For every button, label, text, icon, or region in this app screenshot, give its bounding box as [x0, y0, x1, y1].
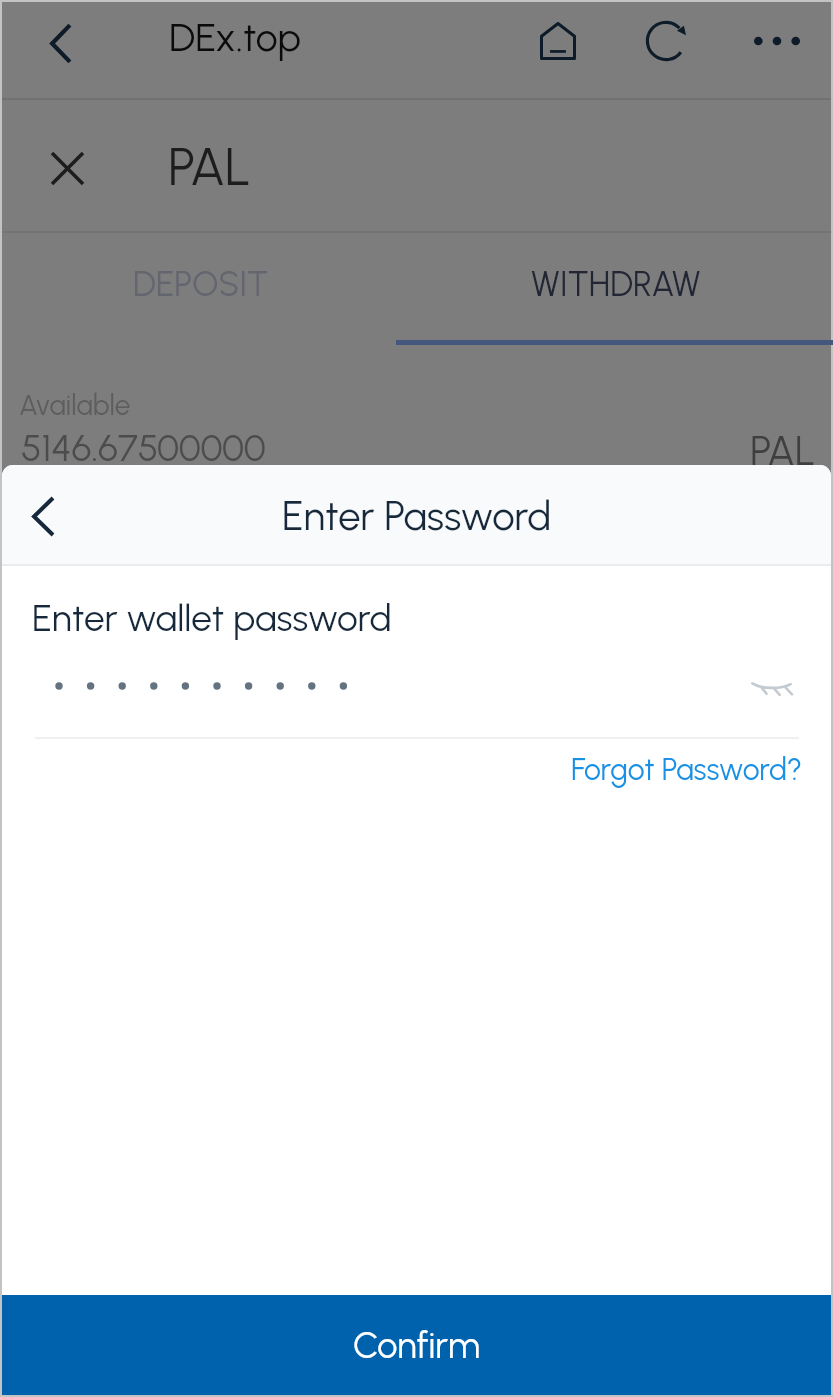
button[interactable]: WITHDRAW	[398, 233, 833, 345]
button[interactable]: DEPOSIT	[2, 233, 399, 345]
button[interactable]: Back	[30, 9, 92, 77]
button[interactable]: Forgot Password?	[557, 744, 807, 794]
button[interactable]: Back	[10, 483, 76, 549]
staticText: WITHDRAW	[531, 264, 701, 305]
button[interactable]: Reload	[633, 8, 699, 74]
staticText: PAL	[168, 136, 251, 198]
button[interactable]: Show password	[735, 662, 807, 716]
staticText: Enter wallet password	[32, 596, 392, 640]
staticText: Forgot Password?	[571, 751, 803, 787]
staticText: Enter Password	[282, 492, 552, 540]
staticText: Confirm	[353, 1324, 480, 1367]
staticText: Available	[19, 388, 131, 422]
button[interactable]: More options	[744, 8, 810, 74]
staticText: DEx.top	[169, 14, 301, 61]
staticText: DEPOSIT	[133, 264, 269, 305]
staticText: 5146.67500000	[21, 426, 266, 470]
button[interactable]: Home	[525, 8, 591, 74]
staticText: PAL	[750, 426, 816, 475]
button[interactable]: Close	[34, 135, 100, 201]
button[interactable]: Confirm	[2, 1295, 831, 1395]
